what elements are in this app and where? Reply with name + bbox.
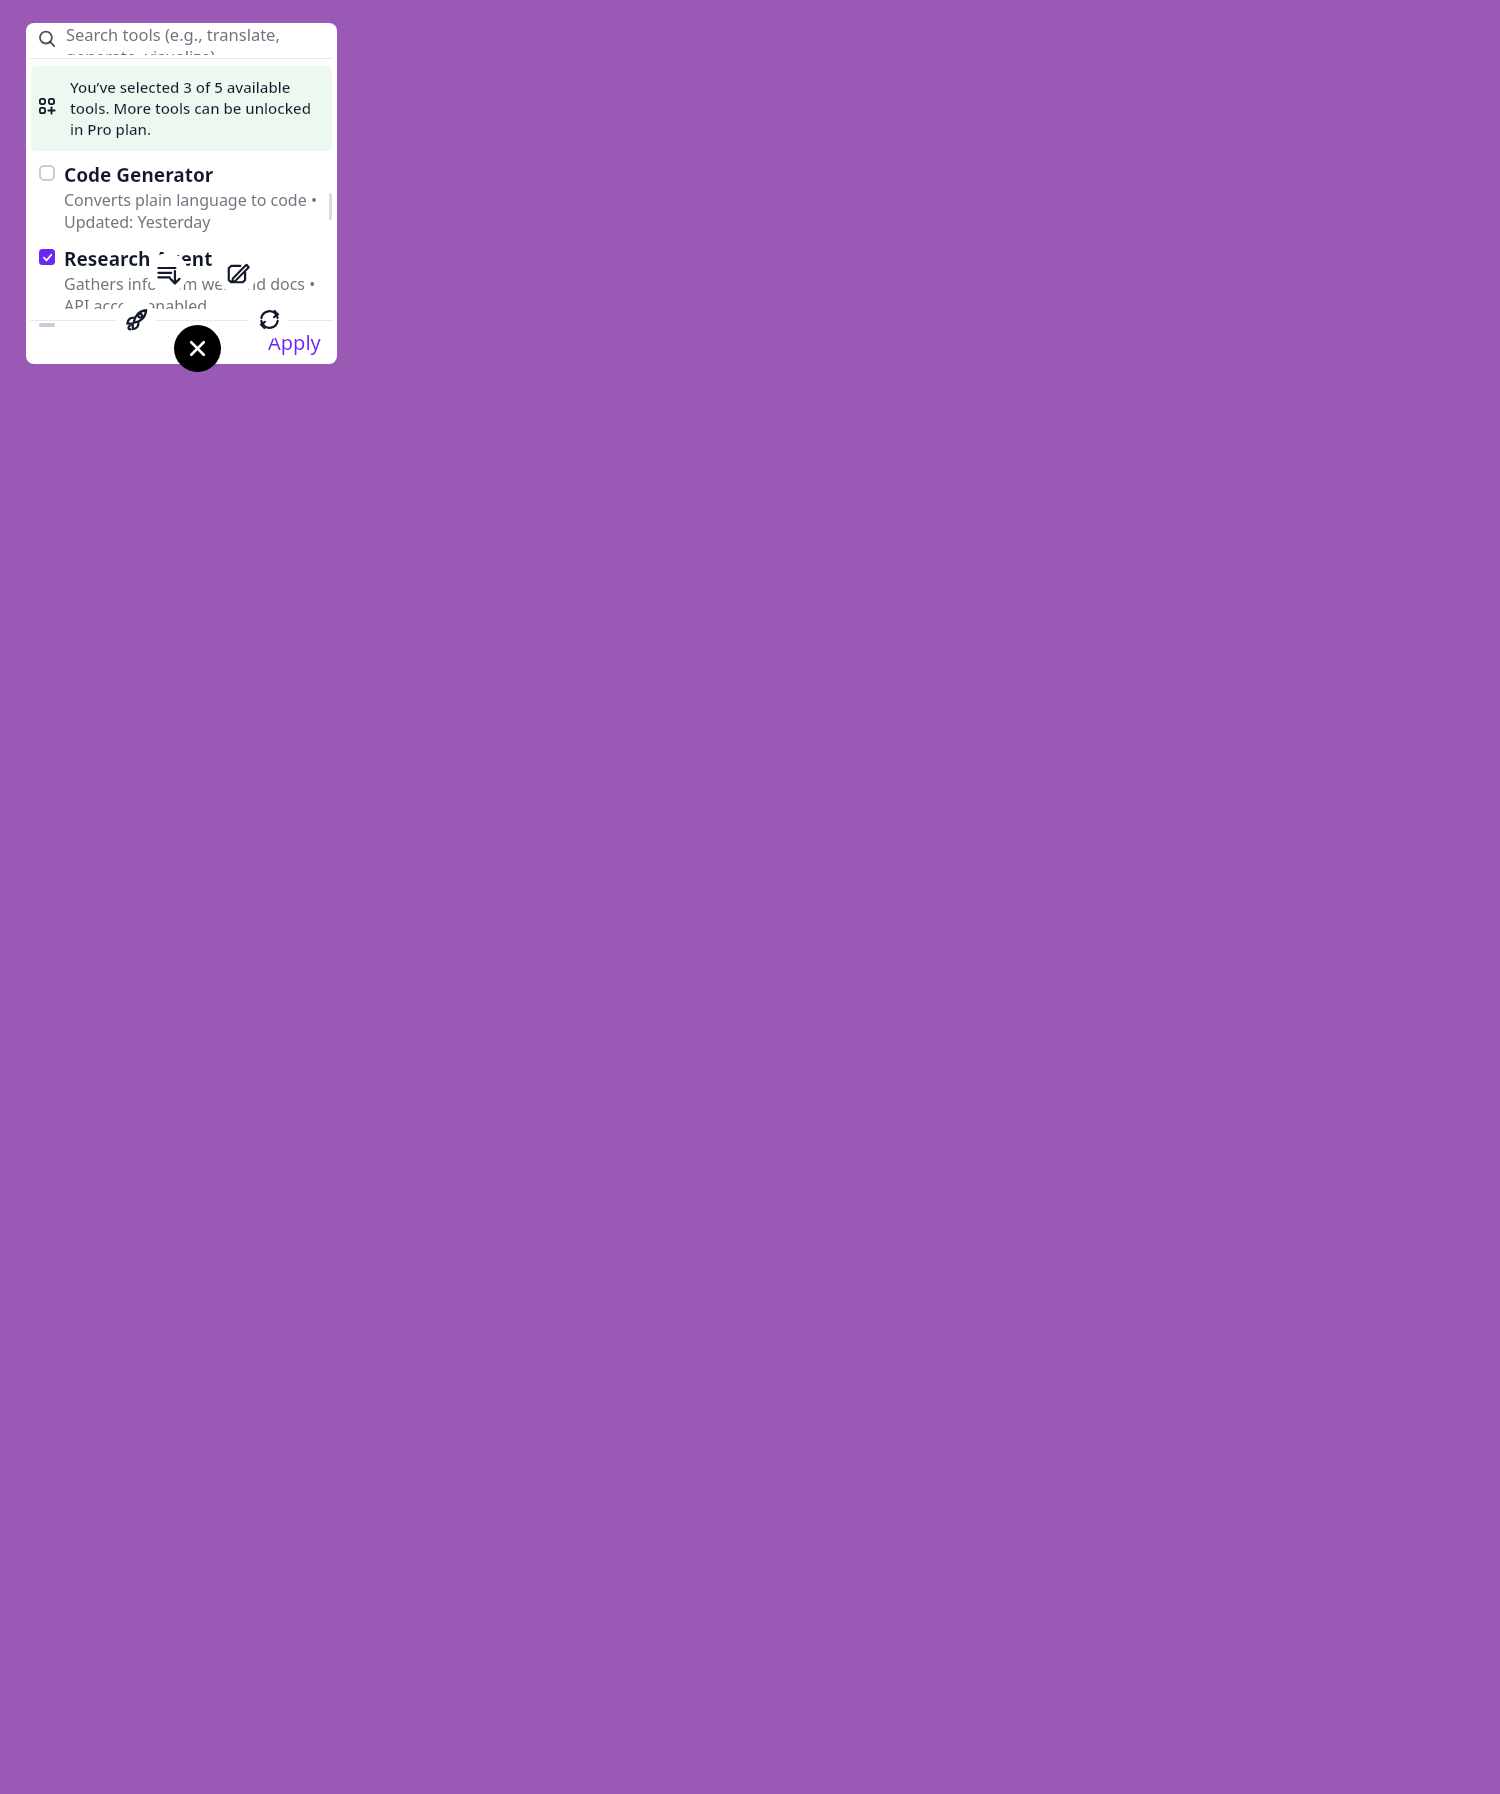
button[interactable]: Edit [217,253,257,293]
staticText: Converts plain language to code • Update… [64,189,327,233]
staticText: Apply [268,329,321,356]
button[interactable]: Search [26,23,337,55]
other: Search [38,30,56,48]
staticText: You’ve selected 3 of 5 available tools. … [70,77,320,140]
button[interactable]: Refresh [249,299,289,339]
button[interactable]: Code Generator [26,160,337,244]
button[interactable]: Launch [116,299,156,339]
button[interactable]: Research Agent [26,244,337,320]
button[interactable]: Sort [148,253,188,293]
button[interactable]: Apply [252,323,337,362]
staticText: Search tools (e.g., translate, generate,… [66,23,337,55]
button[interactable]: Close [174,325,221,372]
button[interactable]: You’ve selected 3 of 5 available tools. … [31,66,332,151]
staticText: Research Agent [64,246,213,272]
staticText: Gathers info from web and docs • API acc… [64,273,327,309]
staticText: Code Generator [64,162,214,188]
